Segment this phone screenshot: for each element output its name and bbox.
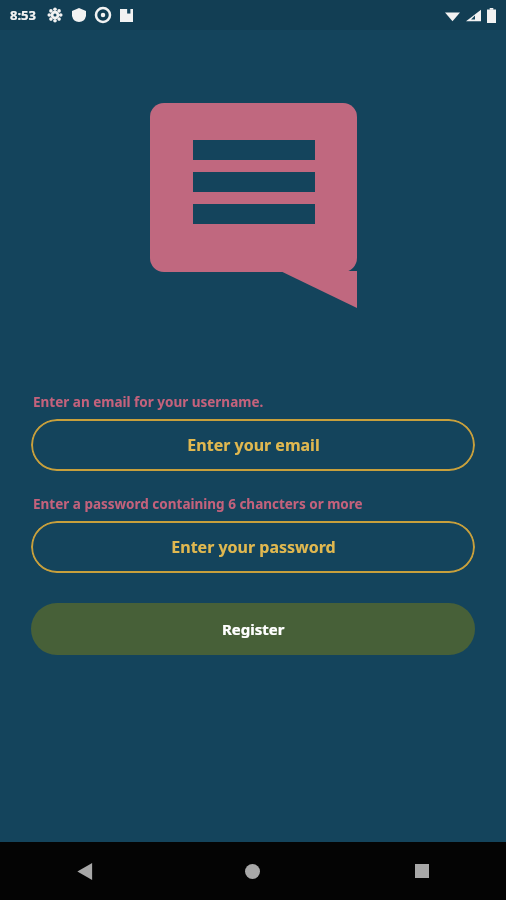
button[interactable]: Enter your email [31, 419, 475, 471]
staticText: Enter your password [171, 536, 336, 558]
button[interactable]: Register [31, 603, 475, 655]
button[interactable]: Home [168, 842, 337, 900]
button[interactable]: Back [0, 842, 168, 900]
staticText: Enter a password containing 6 chancters … [33, 495, 363, 513]
staticText: Register [222, 619, 285, 639]
staticText: 8:53 [10, 6, 36, 24]
button[interactable]: Enter your password [31, 521, 475, 573]
staticText: Enter your email [187, 434, 320, 456]
button[interactable]: Recent apps [337, 842, 506, 900]
staticText: Enter an email for your username. [33, 393, 264, 411]
